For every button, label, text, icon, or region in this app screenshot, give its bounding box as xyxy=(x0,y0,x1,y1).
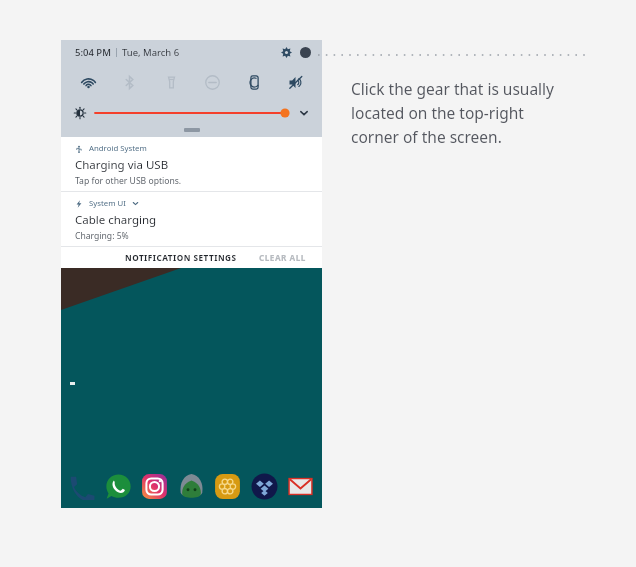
button[interactable]: WhatsApp xyxy=(102,470,134,502)
button[interactable]: User profile xyxy=(297,44,313,60)
button[interactable]: System UI xyxy=(61,192,322,246)
button[interactable]: Dropbox xyxy=(248,470,280,502)
staticText: Click the gear that is usually xyxy=(351,78,555,99)
button[interactable]: Android System xyxy=(61,137,322,191)
staticText: Tap for other USB options. xyxy=(75,175,182,187)
button[interactable]: Bluetooth xyxy=(114,67,144,97)
button[interactable]: Phone xyxy=(65,470,97,502)
staticText: Charging: 5% xyxy=(75,230,129,242)
button[interactable]: Mute xyxy=(280,67,310,97)
staticText: Tue, March 6 xyxy=(122,46,180,59)
staticText: corner of the screen. xyxy=(351,126,502,147)
staticText: 5:04 PM xyxy=(75,46,111,59)
button[interactable]: CLEAR ALL xyxy=(255,249,310,266)
button[interactable]: Photos xyxy=(211,470,243,502)
button[interactable]: Wi-Fi xyxy=(73,67,103,97)
button[interactable]: Do not disturb xyxy=(197,67,227,97)
button[interactable]: Vivo xyxy=(175,470,207,502)
button[interactable]: Gmail xyxy=(284,470,316,502)
staticText: located on the top-right xyxy=(351,102,524,123)
staticText: Cable charging xyxy=(75,212,157,228)
button[interactable]: Settings xyxy=(278,44,294,60)
staticText: System UI xyxy=(89,198,126,209)
button[interactable]: NOTIFICATION SETTINGS xyxy=(121,249,241,266)
button[interactable]: Brightness slider xyxy=(95,104,290,122)
button[interactable]: Auto rotate xyxy=(239,67,269,97)
button[interactable]: Flashlight xyxy=(156,67,186,97)
staticText: Charging via USB xyxy=(75,157,169,173)
staticText: NOTIFICATION SETTINGS xyxy=(125,252,237,263)
staticText: Android System xyxy=(89,143,147,154)
button[interactable]: Instagram xyxy=(138,470,170,502)
staticText: CLEAR ALL xyxy=(259,252,306,263)
button[interactable]: Expand xyxy=(296,105,312,121)
